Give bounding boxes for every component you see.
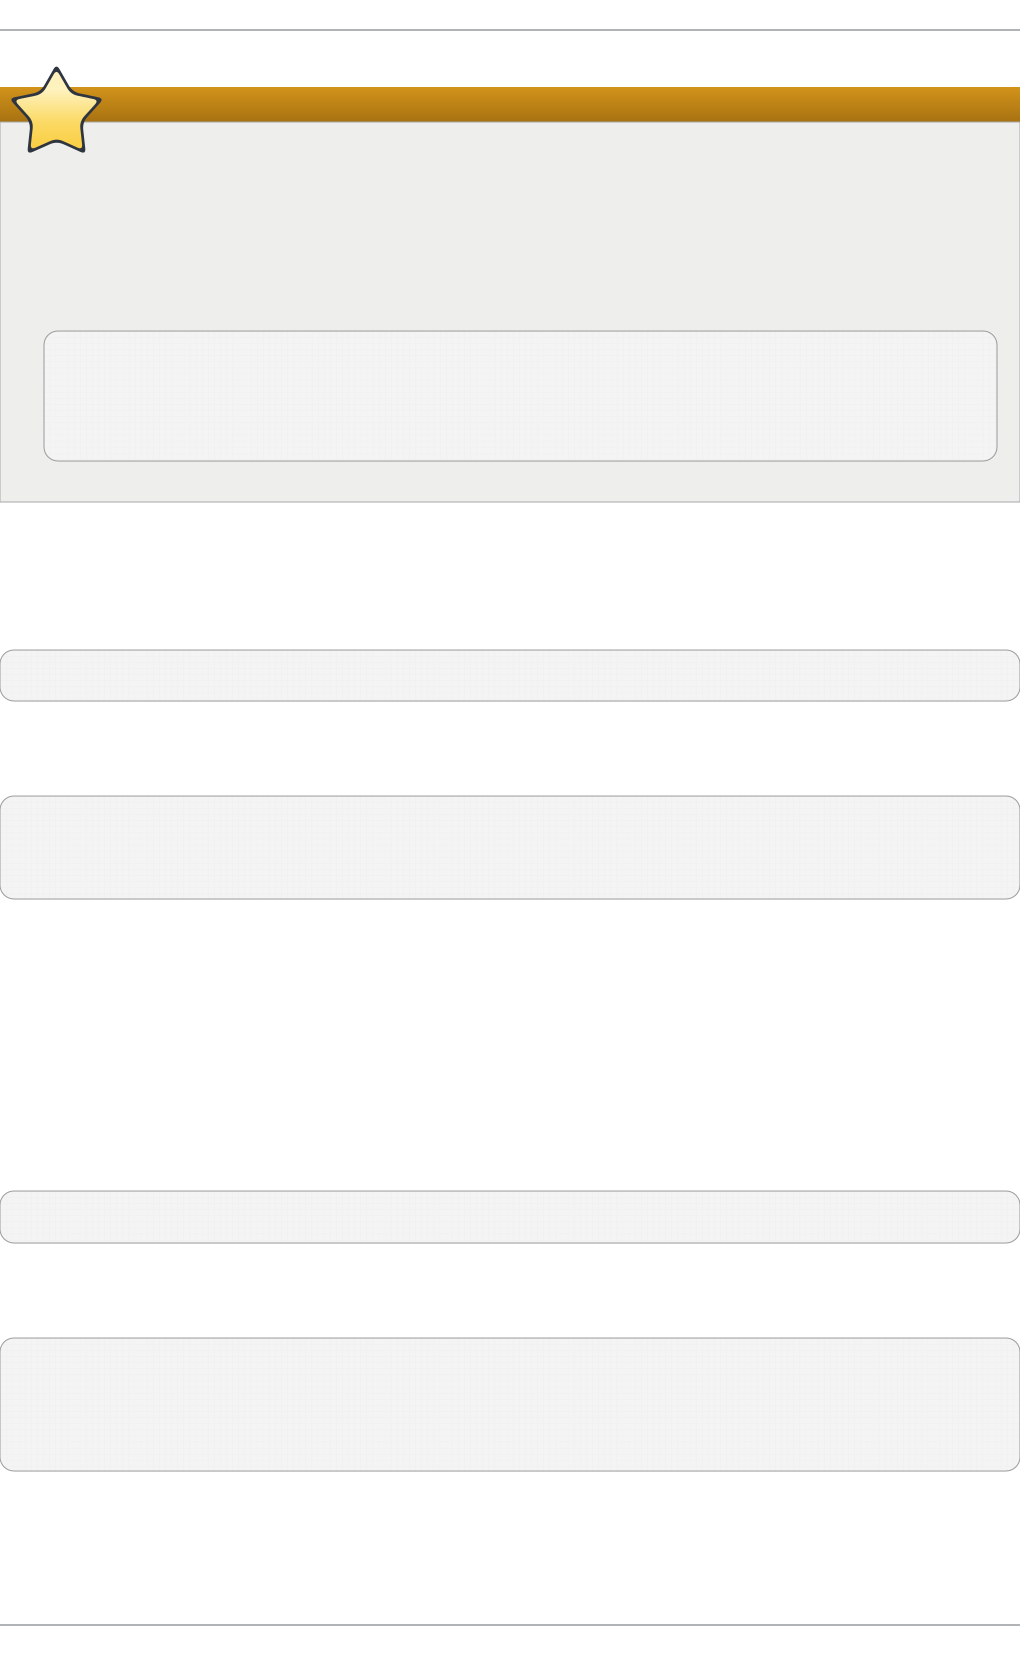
button[interactable] [0, 1191, 1020, 1243]
button[interactable] [0, 1338, 1020, 1471]
button[interactable] [0, 650, 1020, 701]
button[interactable] [0, 796, 1020, 899]
button[interactable] [44, 331, 997, 461]
